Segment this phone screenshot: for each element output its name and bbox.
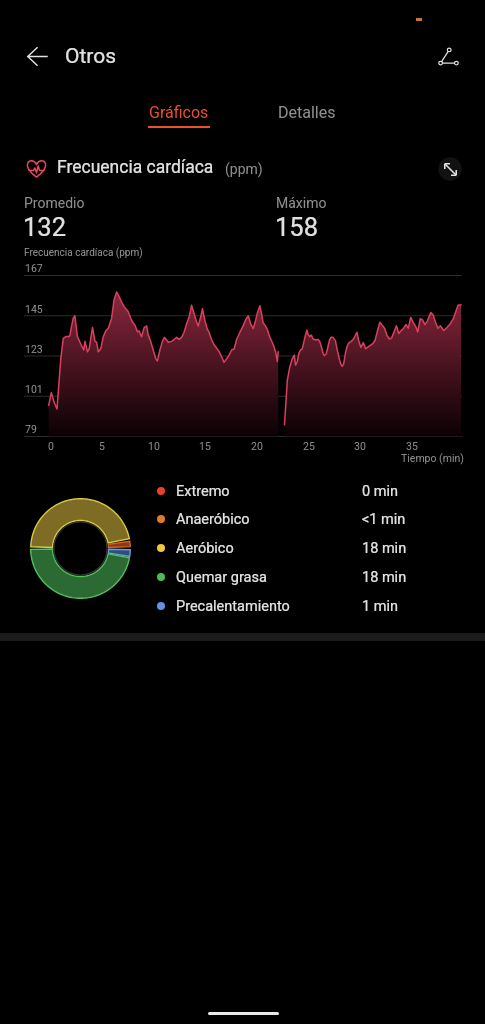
staticText: 158 (275, 212, 318, 242)
button[interactable]: Detalles (261, 96, 353, 134)
staticText: 10 (148, 440, 160, 452)
staticText: Frecuencia cardíaca (ppm) (24, 247, 143, 259)
button[interactable]: Quemar grasa (157, 563, 447, 591)
staticText: 101 (25, 383, 43, 395)
staticText: 20 (251, 440, 263, 452)
staticText: Máximo (276, 195, 327, 211)
staticText: 5 (99, 440, 105, 452)
staticText: 167 (25, 262, 43, 274)
button[interactable]: Back (14, 34, 59, 79)
staticText: <1 min (362, 511, 406, 528)
staticText: 18 min (362, 569, 407, 586)
staticText: Gráficos (149, 103, 209, 122)
staticText: Quemar grasa (176, 569, 362, 586)
button[interactable]: Share (426, 34, 471, 79)
staticText: 18 min (362, 540, 407, 557)
staticText: 0 (48, 440, 54, 452)
staticText: Detalles (278, 103, 336, 122)
button[interactable]: Anaeróbico (157, 505, 447, 533)
staticText: 145 (25, 303, 43, 315)
button[interactable]: Aeróbico (157, 534, 447, 562)
staticText: 30 (354, 440, 366, 452)
button[interactable]: Extremo (157, 477, 447, 505)
button[interactable]: Expand chart (433, 152, 467, 186)
staticText: 15 (199, 440, 211, 452)
staticText: Promedio (24, 195, 85, 211)
staticText: Frecuencia cardíaca (57, 157, 214, 178)
staticText: 25 (303, 440, 315, 452)
staticText: Precalentamiento (176, 598, 362, 615)
staticText: 132 (23, 212, 66, 242)
staticText: (ppm) (225, 161, 263, 177)
staticText: 35 (406, 440, 418, 452)
staticText: Otros (65, 44, 117, 69)
staticText: Anaeróbico (176, 511, 362, 528)
staticText: 0 min (362, 483, 398, 500)
staticText: Extremo (176, 483, 362, 500)
staticText: Aeróbico (176, 540, 362, 557)
button[interactable]: Precalentamiento (157, 592, 447, 620)
staticText: Tiempo (min) (401, 452, 464, 464)
staticText: 1 min (362, 598, 398, 615)
staticText: 79 (25, 423, 37, 435)
button[interactable]: Gráficos (133, 96, 225, 134)
staticText: 123 (25, 343, 43, 355)
